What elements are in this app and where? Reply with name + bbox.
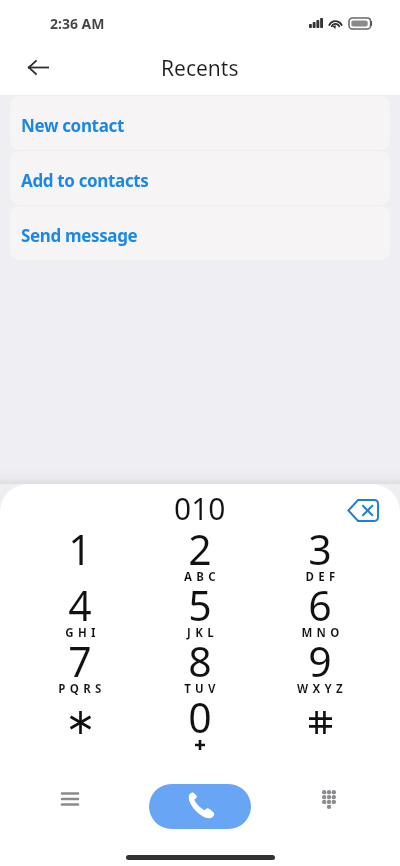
button[interactable]: Menu: [47, 776, 93, 822]
staticText: 2: [188, 521, 212, 577]
staticText: 3: [308, 521, 332, 577]
staticText: New contact: [21, 114, 124, 137]
button[interactable]: Send message: [10, 206, 390, 260]
button[interactable]: 8: [140, 637, 260, 693]
button[interactable]: Back: [14, 43, 62, 91]
staticText: 8: [188, 633, 212, 689]
staticText: 6: [308, 577, 332, 633]
button[interactable]: 7: [20, 637, 140, 693]
button[interactable]: 1: [20, 525, 140, 581]
button[interactable]: Add to contacts: [10, 151, 390, 205]
button[interactable]: Call: [149, 784, 251, 829]
staticText: GHI: [65, 625, 100, 641]
staticText: DEF: [305, 569, 340, 585]
button[interactable]: 0: [140, 693, 260, 749]
button[interactable]: 9: [260, 637, 380, 693]
staticText: Add to contacts: [21, 169, 149, 192]
staticText: Recents: [161, 54, 239, 83]
staticText: Send message: [21, 224, 138, 247]
button[interactable]: [260, 693, 380, 749]
button[interactable]: 3: [260, 525, 380, 581]
staticText: 5: [188, 577, 212, 633]
button[interactable]: [20, 693, 140, 749]
button[interactable]: 4: [20, 581, 140, 637]
button[interactable]: 2: [140, 525, 260, 581]
staticText: 1: [68, 521, 92, 577]
staticText: 9: [308, 633, 332, 689]
staticText: 010: [174, 488, 226, 529]
button[interactable]: Backspace: [341, 488, 385, 532]
staticText: 0: [188, 689, 212, 745]
staticText: 7: [68, 633, 92, 689]
staticText: WXYZ: [297, 681, 347, 697]
button[interactable]: New contact: [10, 96, 390, 150]
staticText: MNO: [301, 625, 344, 641]
staticText: TUV: [184, 681, 220, 697]
staticText: JKL: [187, 625, 218, 641]
staticText: PQRS: [58, 681, 106, 697]
staticText: 2:36 AM: [50, 14, 105, 33]
staticText: 4: [68, 577, 92, 633]
button[interactable]: Dialpad: [306, 776, 352, 822]
button[interactable]: 6: [260, 581, 380, 637]
staticText: ABC: [184, 569, 220, 585]
button[interactable]: 5: [140, 581, 260, 637]
